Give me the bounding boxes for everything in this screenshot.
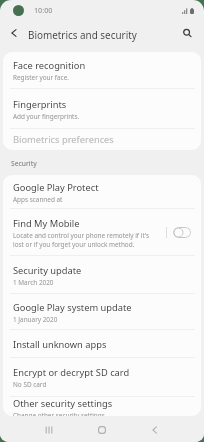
button[interactable]: Security update bbox=[3, 256, 201, 294]
staticText: 10:00 bbox=[34, 5, 53, 15]
staticText: Apps scanned at bbox=[13, 195, 63, 204]
button[interactable]: Navigate up bbox=[0, 22, 26, 44]
button[interactable]: Home bbox=[75, 417, 128, 442]
button[interactable]: Install unknown apps bbox=[3, 330, 201, 358]
staticText: Change other security settings. bbox=[13, 411, 107, 416]
button[interactable]: Google Play Protect bbox=[3, 175, 201, 209]
button[interactable]: Back bbox=[128, 417, 181, 442]
staticText: No SD card bbox=[13, 380, 47, 389]
staticText: Security update bbox=[13, 264, 82, 277]
button[interactable]: Find My Mobile switch bbox=[173, 227, 191, 238]
staticText: Find My Mobile bbox=[13, 217, 80, 230]
staticText: 1 March 2020 bbox=[13, 278, 54, 287]
staticText: Fingerprints bbox=[13, 98, 67, 111]
staticText: Google Play Protect bbox=[13, 181, 99, 194]
button[interactable]: Other security settings bbox=[3, 397, 201, 416]
staticText: Encrypt or decrypt SD card bbox=[13, 366, 130, 379]
staticText: Install unknown apps bbox=[13, 338, 107, 351]
button[interactable]: Fingerprints bbox=[3, 89, 201, 129]
staticText: Other security settings bbox=[13, 397, 113, 410]
button[interactable]: Recent apps bbox=[23, 417, 75, 442]
staticText: Google Play system update bbox=[13, 301, 132, 314]
staticText: Face recognition bbox=[13, 59, 86, 72]
button[interactable]: Find My Mobile bbox=[3, 209, 201, 256]
staticText: Add your fingerprints. bbox=[13, 112, 80, 121]
button[interactable]: Biometrics preferences bbox=[3, 129, 201, 150]
button[interactable]: Google Play system update bbox=[3, 294, 201, 330]
button[interactable]: Face recognition bbox=[3, 52, 201, 89]
button[interactable]: Encrypt or decrypt SD card bbox=[3, 358, 201, 397]
staticText: Biometrics preferences bbox=[13, 133, 114, 146]
staticText: Register your face. bbox=[13, 73, 69, 82]
staticText: Security bbox=[11, 159, 37, 168]
staticText: Biometrics and security bbox=[28, 28, 137, 41]
staticText: 1 January 2020 bbox=[13, 315, 58, 324]
button[interactable]: Search bbox=[176, 22, 198, 44]
staticText: Locate and control your phone remotely i… bbox=[13, 231, 150, 248]
